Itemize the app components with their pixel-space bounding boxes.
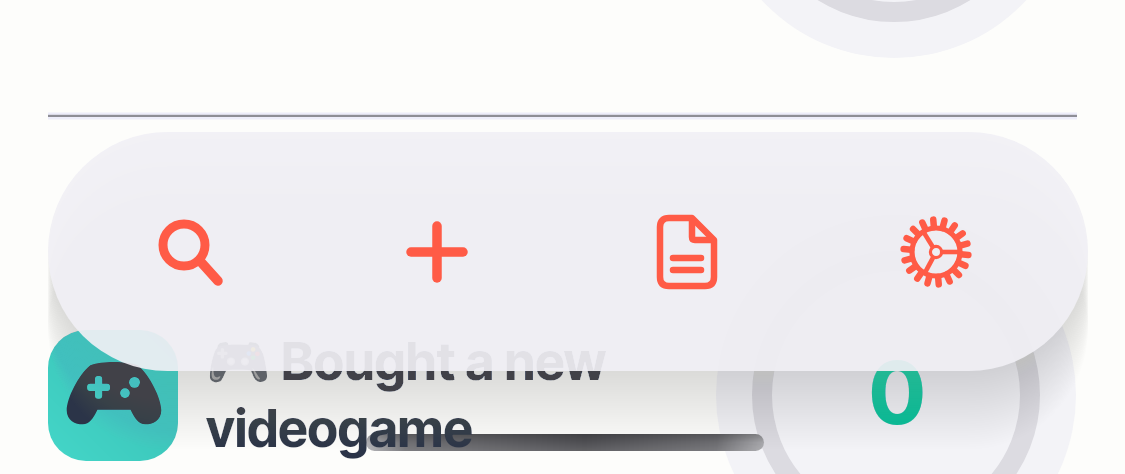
- staticText: 🎮 Bought a new videogame: [206, 330, 607, 459]
- button[interactable]: Search: [48, 132, 308, 371]
- button[interactable]: Documents: [568, 132, 828, 371]
- staticText: 0: [869, 341, 926, 445]
- button[interactable]: Settings: [828, 132, 1088, 371]
- button[interactable]: Add: [308, 132, 568, 371]
